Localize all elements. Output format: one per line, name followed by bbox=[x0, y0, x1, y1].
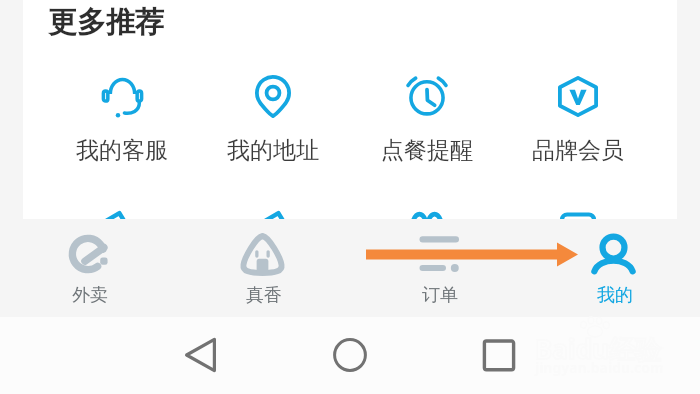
button[interactable]: 订单 bbox=[383, 230, 493, 316]
staticText: 我的 bbox=[597, 284, 633, 307]
button[interactable]: More bbox=[76, 190, 168, 219]
button[interactable]: 我的 bbox=[558, 230, 668, 316]
staticText: 外卖 bbox=[72, 284, 108, 307]
button[interactable]: More bbox=[227, 190, 319, 219]
staticText: 真香 bbox=[246, 284, 282, 307]
button[interactable]: Recents bbox=[479, 335, 519, 375]
staticText: 我的客服 bbox=[76, 136, 168, 165]
button[interactable]: Back bbox=[180, 335, 220, 375]
button[interactable]: More bbox=[381, 190, 473, 219]
button[interactable]: 真香 bbox=[207, 230, 317, 316]
staticText: 我的地址 bbox=[227, 136, 319, 165]
staticText: 订单 bbox=[422, 284, 458, 307]
staticText: 更多推荐 bbox=[48, 4, 164, 41]
button[interactable]: 我的客服 bbox=[76, 74, 168, 165]
button[interactable]: Home bbox=[330, 335, 370, 375]
button[interactable]: 点餐提醒 bbox=[381, 74, 473, 165]
button[interactable]: 外卖 bbox=[33, 230, 143, 316]
staticText: 品牌会员 bbox=[532, 136, 624, 165]
button[interactable]: 我的地址 bbox=[227, 74, 319, 165]
button[interactable]: More bbox=[532, 190, 624, 219]
button[interactable]: 品牌会员 bbox=[532, 74, 624, 165]
staticText: 点餐提醒 bbox=[381, 136, 473, 165]
